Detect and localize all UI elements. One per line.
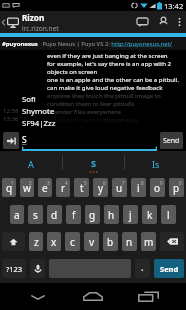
button[interactable]: a xyxy=(10,205,24,224)
button[interactable]: A xyxy=(0,151,62,174)
button[interactable]: Send xyxy=(154,259,184,278)
button[interactable]: l xyxy=(161,205,176,224)
staticText: a xyxy=(14,208,20,222)
staticText: 13:36 xyxy=(3,115,19,123)
staticText: e xyxy=(42,181,48,195)
staticText: ?123 xyxy=(6,264,23,274)
button[interactable]: k xyxy=(142,205,157,224)
staticText: g xyxy=(89,208,96,222)
button[interactable]: 4 xyxy=(56,178,70,197)
staticText: 0 xyxy=(179,180,182,186)
button[interactable]: Is xyxy=(125,151,186,174)
staticText: l xyxy=(167,208,170,222)
button[interactable]: Backspace xyxy=(160,232,184,251)
staticText: 7 xyxy=(122,180,125,186)
staticText: s xyxy=(33,208,38,222)
button[interactable]: s xyxy=(28,205,43,224)
staticText: k xyxy=(147,208,153,222)
staticText: w xyxy=(23,181,31,195)
button[interactable]: SF94|Zzz xyxy=(22,117,80,129)
button[interactable]: c xyxy=(65,232,80,251)
staticText: m xyxy=(144,235,154,249)
button[interactable]: 8 xyxy=(131,178,146,197)
button[interactable]: d xyxy=(47,205,62,224)
button[interactable]: 2 xyxy=(20,178,34,197)
button[interactable]: z xyxy=(29,232,43,251)
button[interactable]: f xyxy=(66,205,81,224)
button[interactable]: S xyxy=(22,129,157,151)
staticText: Sofi xyxy=(22,94,36,105)
button[interactable]: 7 xyxy=(112,178,127,197)
button[interactable]: Users xyxy=(153,11,173,33)
button[interactable]: . xyxy=(135,259,150,278)
staticText: f xyxy=(72,208,76,222)
staticText: . xyxy=(141,260,144,274)
staticText: y xyxy=(98,181,104,195)
staticText: u xyxy=(116,181,123,195)
staticText: 8 xyxy=(141,180,144,186)
staticText: Is xyxy=(152,158,160,171)
staticText: b xyxy=(107,235,114,249)
button[interactable]: More options xyxy=(173,11,186,33)
staticText: i xyxy=(137,181,140,195)
staticText: t xyxy=(80,181,84,195)
button[interactable]: 9 xyxy=(150,178,165,197)
button[interactable]: Recent apps xyxy=(131,283,165,310)
button[interactable]: Shift xyxy=(2,232,25,251)
button[interactable]: Sofi xyxy=(22,93,80,105)
staticText: irc.rizon.net xyxy=(22,24,59,33)
button[interactable]: Hide keyboard xyxy=(21,283,55,310)
button[interactable]: Home xyxy=(76,283,110,310)
staticText: x xyxy=(51,235,57,249)
staticText: 2 xyxy=(29,180,32,186)
staticText: A xyxy=(28,158,34,171)
staticText: Rizon xyxy=(22,12,45,23)
staticText: p xyxy=(173,181,180,195)
button[interactable]: Tab complete xyxy=(3,132,19,149)
button[interactable]: 0 xyxy=(169,178,184,197)
staticText: lavender flies everywhere xyxy=(47,107,121,115)
button[interactable]: ?123 xyxy=(2,259,26,278)
staticText: Send xyxy=(163,136,180,146)
staticText: 3 xyxy=(47,180,50,186)
staticText: 9 xyxy=(160,180,163,186)
button[interactable]: Shymote xyxy=(22,105,80,117)
button[interactable]: n xyxy=(122,232,137,251)
button[interactable]: S xyxy=(63,151,124,174)
staticText: S xyxy=(22,134,27,146)
staticText: o xyxy=(154,181,161,195)
staticText: 5 xyxy=(84,180,87,186)
staticText: can make it give loud negative feedback xyxy=(47,83,163,91)
button[interactable]: g xyxy=(85,205,100,224)
button[interactable]: v xyxy=(84,232,99,251)
staticText: z xyxy=(34,235,39,249)
staticText: Shymote xyxy=(22,106,55,117)
button[interactable]: b xyxy=(103,232,118,251)
staticText: even if they are just banging at the scr… xyxy=(47,51,168,59)
staticText: d xyxy=(51,208,58,222)
button[interactable]: m xyxy=(141,232,156,251)
staticText: for example, let's say there is an app w… xyxy=(47,59,172,67)
staticText: objects on screen xyxy=(47,67,98,75)
button[interactable]: 1 xyxy=(2,178,16,197)
staticText: r xyxy=(61,181,66,195)
staticText: 6 xyxy=(103,180,106,186)
button[interactable]: 5 xyxy=(74,178,89,197)
staticText: Send xyxy=(160,264,179,274)
staticText: #puyonexus Puyo Nexus | Puyo VS 2: http:… xyxy=(2,40,186,48)
staticText: 12:58 xyxy=(3,107,19,115)
button[interactable]: Navigate up xyxy=(0,11,20,33)
staticText: j xyxy=(129,208,132,222)
button[interactable]: 3 xyxy=(38,178,52,197)
button[interactable]: 6 xyxy=(93,178,108,197)
staticText: has joined channel #puyonexus xyxy=(47,115,139,123)
button[interactable]: #puyonexus Puyo Nexus | Puyo VS 2: http:… xyxy=(0,37,186,50)
button[interactable]: Channels xyxy=(131,11,153,33)
button[interactable]: h xyxy=(104,205,119,224)
staticText: v xyxy=(89,235,95,249)
button[interactable]: Send xyxy=(160,132,183,149)
button[interactable]: j xyxy=(123,205,138,224)
button[interactable]: Voice input xyxy=(30,259,45,278)
button[interactable]: x xyxy=(47,232,61,251)
